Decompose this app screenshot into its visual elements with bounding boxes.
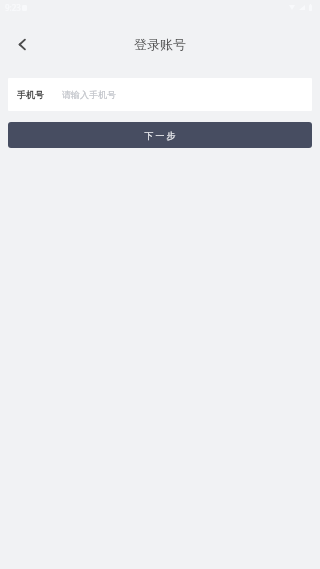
button[interactable]: 手机号 xyxy=(8,78,312,111)
staticText: 请输入手机号 xyxy=(62,89,116,100)
button[interactable]: 下一步 xyxy=(8,122,312,148)
staticText: 手机号 xyxy=(17,89,44,100)
staticText: 下一步 xyxy=(144,130,178,141)
staticText: 手机号 xyxy=(17,89,44,100)
staticText: 登录账号 xyxy=(134,36,186,52)
button[interactable]: Back xyxy=(0,22,44,66)
